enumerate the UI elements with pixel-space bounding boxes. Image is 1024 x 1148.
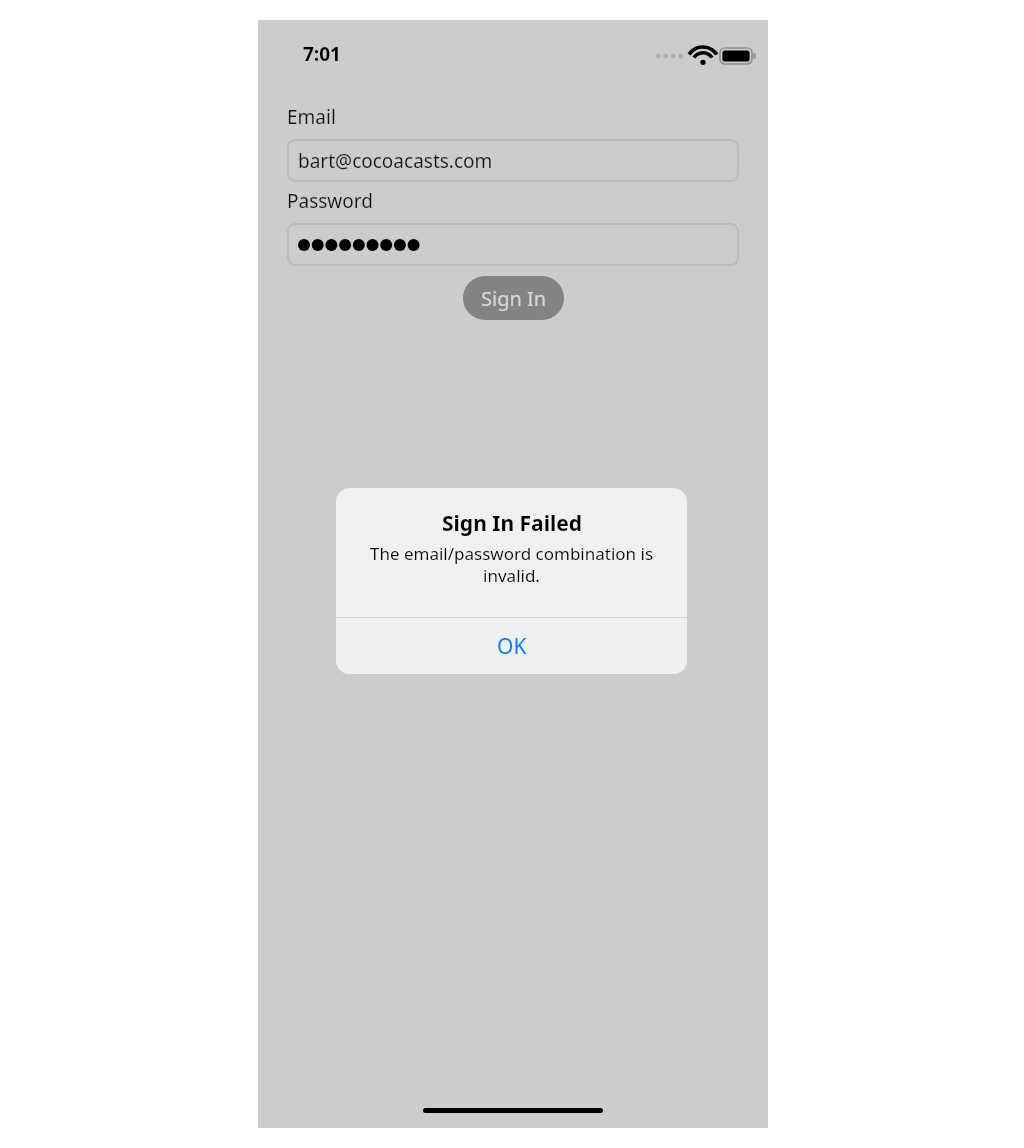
button[interactable]	[287, 223, 739, 266]
staticText: The email/password combination is invali…	[350, 542, 673, 587]
button[interactable]: OK	[336, 618, 687, 674]
staticText: bart@cocoacasts.com	[298, 148, 493, 174]
staticText: Email	[287, 104, 336, 130]
staticText: Sign In Failed	[442, 509, 582, 538]
staticText: 7:01	[303, 41, 341, 67]
staticText: Sign In	[481, 285, 547, 312]
button[interactable]: Sign In	[463, 276, 564, 320]
staticText: Password	[287, 188, 373, 214]
button[interactable]: bart@cocoacasts.com	[287, 139, 739, 182]
staticText: OK	[497, 632, 527, 661]
